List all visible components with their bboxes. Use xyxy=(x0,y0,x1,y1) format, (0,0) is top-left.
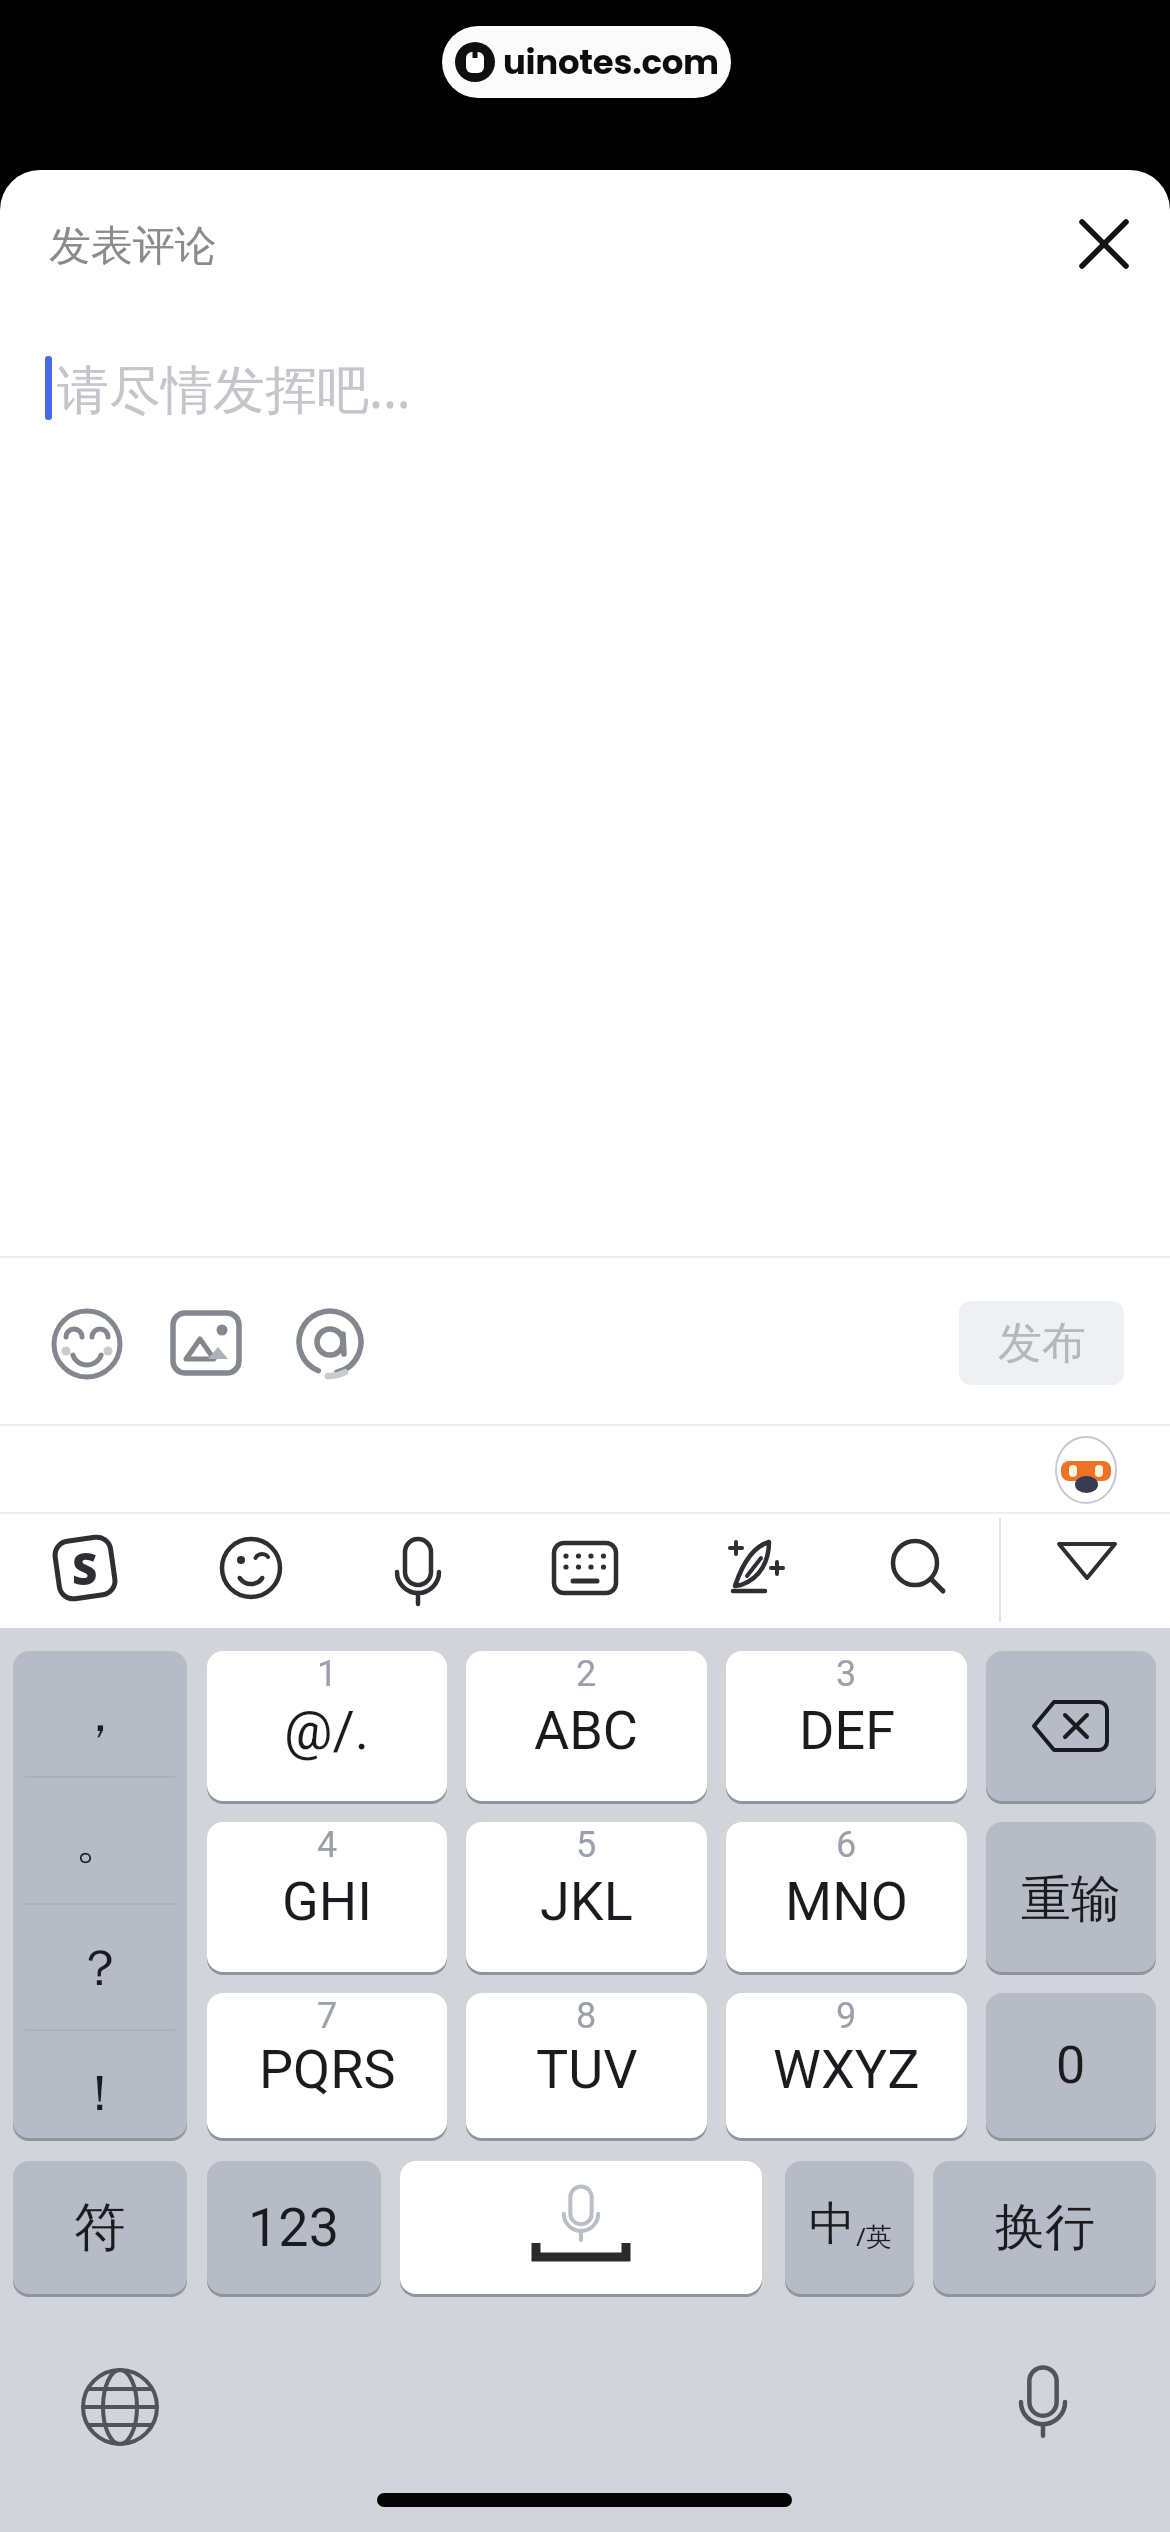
staticText: ABC xyxy=(534,1699,639,1762)
staticText: uinotes.com xyxy=(503,38,719,86)
staticText: 1 xyxy=(317,1653,338,1695)
staticText: MNO xyxy=(785,1870,908,1933)
button[interactable]: 123 xyxy=(207,2161,381,2294)
button[interactable]: 8 xyxy=(466,1993,707,2138)
staticText: 重输 xyxy=(1021,1868,1121,1931)
button[interactable] xyxy=(1003,2360,1083,2440)
button[interactable] xyxy=(217,1534,285,1602)
staticText: JKL xyxy=(540,1870,633,1933)
button[interactable]: 发布 xyxy=(959,1301,1124,1385)
button[interactable] xyxy=(719,1534,787,1602)
button[interactable] xyxy=(885,1534,953,1602)
staticText: 发表评论 xyxy=(49,220,217,273)
button[interactable]: S xyxy=(51,1534,119,1602)
staticText: ？ xyxy=(75,1937,125,2000)
staticText: GHI xyxy=(282,1870,372,1933)
button[interactable]: 5 xyxy=(466,1822,707,1972)
button[interactable] xyxy=(1056,1542,1120,1590)
staticText: 。 xyxy=(75,1810,125,1873)
button[interactable] xyxy=(1050,1434,1122,1506)
staticText: 发布 xyxy=(998,1316,1086,1371)
staticText: 0 xyxy=(1056,2035,1086,2096)
staticText: 5 xyxy=(576,1824,597,1866)
button[interactable] xyxy=(290,1305,370,1385)
staticText: ！ xyxy=(75,2062,125,2125)
staticText: 4 xyxy=(317,1824,338,1866)
button[interactable]: 换行 xyxy=(933,2161,1156,2294)
staticText: 中 xyxy=(809,2195,855,2253)
staticText: S xyxy=(72,1538,98,1598)
staticText: 8 xyxy=(576,1995,597,2037)
button[interactable]: 9 xyxy=(726,1993,967,2138)
button[interactable]: 7 xyxy=(207,1993,447,2138)
button[interactable] xyxy=(551,1534,619,1602)
staticText: 请尽情发挥吧... xyxy=(57,352,411,423)
button[interactable] xyxy=(47,1304,127,1384)
staticText: TUV xyxy=(536,2038,638,2101)
button[interactable] xyxy=(384,1534,452,1602)
staticText: 9 xyxy=(836,1995,857,2037)
button[interactable]: 重输 xyxy=(986,1822,1156,1972)
button[interactable]: 符 xyxy=(13,2161,187,2294)
button[interactable]: 0 xyxy=(986,1993,1156,2138)
staticText: 符 xyxy=(74,2195,126,2261)
button[interactable]: 4 xyxy=(207,1822,447,1972)
button[interactable]: 中 xyxy=(785,2161,914,2294)
staticText: DEF xyxy=(799,1699,895,1762)
button[interactable] xyxy=(400,2161,762,2294)
staticText: 123 xyxy=(248,2196,340,2259)
button[interactable] xyxy=(1068,208,1140,280)
button[interactable]: 3 xyxy=(726,1651,967,1801)
staticText: @/. xyxy=(284,1699,370,1762)
button[interactable]: 1 xyxy=(207,1651,447,1801)
staticText: 7 xyxy=(317,1995,338,2037)
button[interactable]: 6 xyxy=(726,1822,967,1972)
staticText: WXYZ xyxy=(773,2038,920,2101)
staticText: 3 xyxy=(836,1653,857,1695)
button[interactable] xyxy=(80,2367,160,2447)
staticText: 换行 xyxy=(995,2196,1095,2259)
staticText: ， xyxy=(75,1683,125,1746)
staticText: PQRS xyxy=(259,2038,396,2101)
staticText: 2 xyxy=(576,1653,597,1695)
button[interactable]: 2 xyxy=(466,1651,707,1801)
button[interactable] xyxy=(166,1303,246,1383)
button[interactable] xyxy=(986,1651,1156,1801)
button[interactable]: ， xyxy=(13,1651,187,2138)
staticText: /英 xyxy=(856,2218,892,2254)
staticText: 6 xyxy=(836,1824,857,1866)
